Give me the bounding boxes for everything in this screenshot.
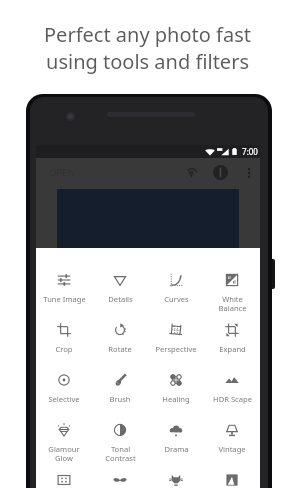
staticText: Drama: [164, 444, 189, 454]
staticText: Selective: [48, 394, 80, 404]
button[interactable]: Looks: [211, 163, 230, 182]
button[interactable]: Crop: [36, 312, 92, 362]
staticText: Details: [108, 294, 133, 304]
button[interactable]: Brush: [92, 362, 148, 412]
staticText: Crop: [55, 344, 73, 354]
staticText: Glamour Glow: [48, 444, 80, 462]
staticText: Expand: [219, 344, 246, 354]
staticText: White Balance: [218, 294, 247, 312]
button[interactable]: Expand: [204, 312, 260, 362]
button[interactable]: Rotate: [92, 312, 148, 362]
staticText: Vintage: [218, 444, 246, 454]
button[interactable]: Details: [92, 262, 148, 312]
button[interactable]: Drama: [148, 412, 204, 462]
button[interactable]: Vintage: [204, 412, 260, 462]
button[interactable]: Revert: [183, 163, 202, 182]
staticText: Tonal Contrast: [105, 444, 136, 462]
staticText: Tune Image: [43, 294, 86, 304]
button[interactable]: Tonal Contrast: [92, 412, 148, 462]
staticText: using tools and filters: [46, 48, 249, 75]
button[interactable]: [92, 462, 148, 488]
staticText: Rotate: [108, 344, 132, 354]
staticText: Brush: [109, 394, 131, 404]
staticText: Perspective: [155, 344, 197, 354]
button[interactable]: HDR Scape: [204, 362, 260, 412]
staticText: 7:00: [242, 146, 258, 157]
button[interactable]: Selective: [36, 362, 92, 412]
staticText: HDR Scape: [213, 394, 252, 404]
button[interactable]: Tune Image: [36, 262, 92, 312]
button[interactable]: [204, 462, 260, 488]
button[interactable]: White Balance: [204, 262, 260, 312]
button[interactable]: [36, 462, 92, 488]
button[interactable]: Curves: [148, 262, 204, 312]
staticText: Curves: [164, 294, 189, 304]
button[interactable]: Glamour Glow: [36, 412, 92, 462]
staticText: Perfect any photo fast: [44, 21, 251, 48]
button[interactable]: Healing: [148, 362, 204, 412]
button[interactable]: [148, 462, 204, 488]
button[interactable]: More options: [239, 163, 258, 182]
staticText: Healing: [162, 394, 190, 404]
button[interactable]: Perspective: [148, 312, 204, 362]
